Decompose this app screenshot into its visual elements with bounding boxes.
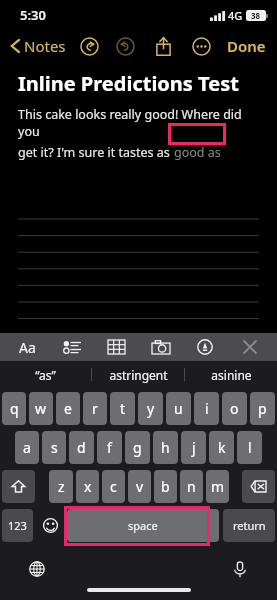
- staticText: v: [136, 477, 144, 496]
- button[interactable]: Dictate: [227, 556, 253, 582]
- button[interactable]: Camera: [146, 334, 176, 360]
- button[interactable]: y: [138, 392, 163, 425]
- staticText: b: [161, 477, 170, 496]
- staticText: p: [258, 399, 267, 418]
- button[interactable]: Change keyboard: [24, 556, 50, 582]
- button[interactable]: n: [180, 470, 203, 503]
- button[interactable]: 123: [2, 509, 33, 542]
- staticText: f: [107, 438, 112, 457]
- staticText: get it? I'm sure it tastes as: [18, 144, 174, 161]
- button[interactable]: asinine: [185, 361, 277, 388]
- staticText: 4G: [228, 8, 243, 23]
- staticText: a: [23, 438, 31, 457]
- staticText: asinine: [211, 367, 252, 383]
- button[interactable]: Text format: [12, 334, 42, 360]
- button[interactable]: g: [125, 431, 150, 464]
- button[interactable]: Emoji: [37, 509, 63, 542]
- button[interactable]: x: [76, 470, 99, 503]
- staticText: u: [174, 399, 183, 418]
- button[interactable]: k: [209, 431, 234, 464]
- staticText: z: [58, 477, 65, 496]
- button[interactable]: Done: [224, 32, 269, 60]
- staticText: y: [147, 399, 155, 418]
- button[interactable]: Share: [150, 33, 176, 59]
- button[interactable]: t: [110, 392, 135, 425]
- button[interactable]: Redo: [112, 33, 138, 59]
- button[interactable]: h: [153, 431, 178, 464]
- button[interactable]: Table: [101, 334, 131, 360]
- staticText: Inline Predictions Test: [18, 70, 239, 97]
- button[interactable]: f: [97, 431, 122, 464]
- button[interactable]: Shift: [2, 470, 35, 503]
- button[interactable]: r: [83, 392, 107, 425]
- staticText: o: [230, 399, 239, 418]
- staticText: n: [187, 477, 196, 496]
- staticText: m: [211, 477, 225, 496]
- button[interactable]: s: [42, 431, 66, 464]
- button[interactable]: a: [15, 431, 39, 464]
- staticText: i: [205, 399, 209, 418]
- staticText: t: [120, 399, 126, 418]
- staticText: Notes: [24, 36, 66, 56]
- button[interactable]: c: [102, 470, 125, 503]
- button[interactable]: w: [29, 392, 53, 425]
- button[interactable]: m: [206, 470, 229, 503]
- button[interactable]: Markup: [190, 334, 220, 360]
- staticText: Aa: [19, 338, 36, 357]
- button[interactable]: Undo: [76, 33, 102, 59]
- button[interactable]: l: [237, 431, 262, 464]
- staticText: j: [192, 438, 196, 457]
- staticText: 5:30: [20, 6, 46, 24]
- button[interactable]: space: [67, 509, 219, 542]
- button[interactable]: z: [49, 470, 73, 503]
- staticText: Done: [227, 36, 266, 56]
- staticText: 38: [251, 10, 261, 21]
- staticText: This cake looks really good! Where did y…: [18, 106, 259, 140]
- staticText: e: [64, 399, 72, 418]
- button[interactable]: i: [194, 392, 219, 425]
- staticText: c: [110, 477, 117, 496]
- button[interactable]: “as”: [0, 361, 91, 388]
- button[interactable]: q: [2, 392, 26, 425]
- staticText: q: [10, 399, 19, 418]
- staticText: w: [35, 399, 47, 418]
- button[interactable]: More options: [188, 33, 214, 59]
- staticText: x: [84, 477, 92, 496]
- button[interactable]: j: [181, 431, 206, 464]
- staticText: return: [233, 518, 266, 533]
- staticText: space: [128, 518, 158, 533]
- staticText: 123: [8, 518, 27, 533]
- staticText: g: [133, 438, 142, 457]
- button[interactable]: o: [222, 392, 247, 425]
- button[interactable]: Close keyboard: [235, 334, 265, 360]
- button[interactable]: e: [56, 392, 80, 425]
- button[interactable]: return: [223, 509, 275, 542]
- staticText: good as: [174, 144, 221, 161]
- staticText: d: [77, 438, 86, 457]
- button[interactable]: d: [69, 431, 94, 464]
- button[interactable]: Backspace: [242, 470, 275, 503]
- button[interactable]: v: [128, 470, 151, 503]
- button[interactable]: b: [154, 470, 177, 503]
- staticText: l: [248, 438, 252, 457]
- staticText: “as”: [35, 367, 56, 383]
- staticText: k: [218, 438, 226, 457]
- button[interactable]: Notes: [8, 32, 68, 60]
- staticText: s: [51, 438, 58, 457]
- staticText: r: [92, 399, 98, 418]
- staticText: astringent: [109, 367, 168, 383]
- button[interactable]: astringent: [92, 361, 184, 388]
- button[interactable]: p: [250, 392, 275, 425]
- button[interactable]: Checklist: [57, 334, 87, 360]
- button[interactable]: u: [166, 392, 191, 425]
- staticText: h: [161, 438, 170, 457]
